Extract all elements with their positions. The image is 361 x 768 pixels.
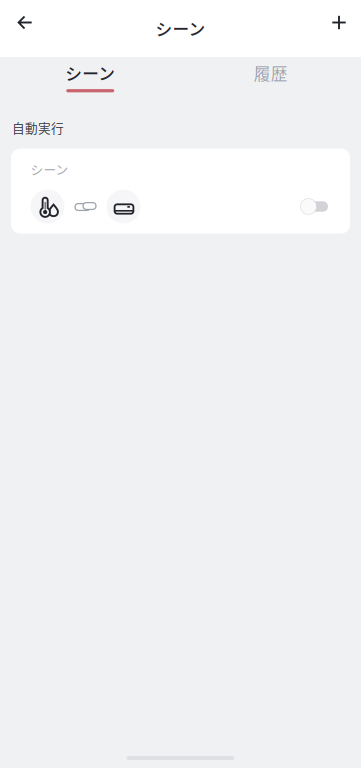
staticText: シーン [30, 160, 68, 178]
button[interactable]: Add scene [317, 0, 361, 44]
staticText: シーン [155, 16, 205, 40]
staticText: シーン [65, 61, 115, 85]
button[interactable]: 履歴 [180, 57, 361, 101]
button[interactable]: シーン [11, 149, 350, 233]
staticText: 履歴 [254, 61, 288, 85]
staticText: 自動実行 [12, 118, 64, 137]
button[interactable]: Back [3, 0, 47, 44]
button[interactable]: シーン [0, 57, 180, 101]
